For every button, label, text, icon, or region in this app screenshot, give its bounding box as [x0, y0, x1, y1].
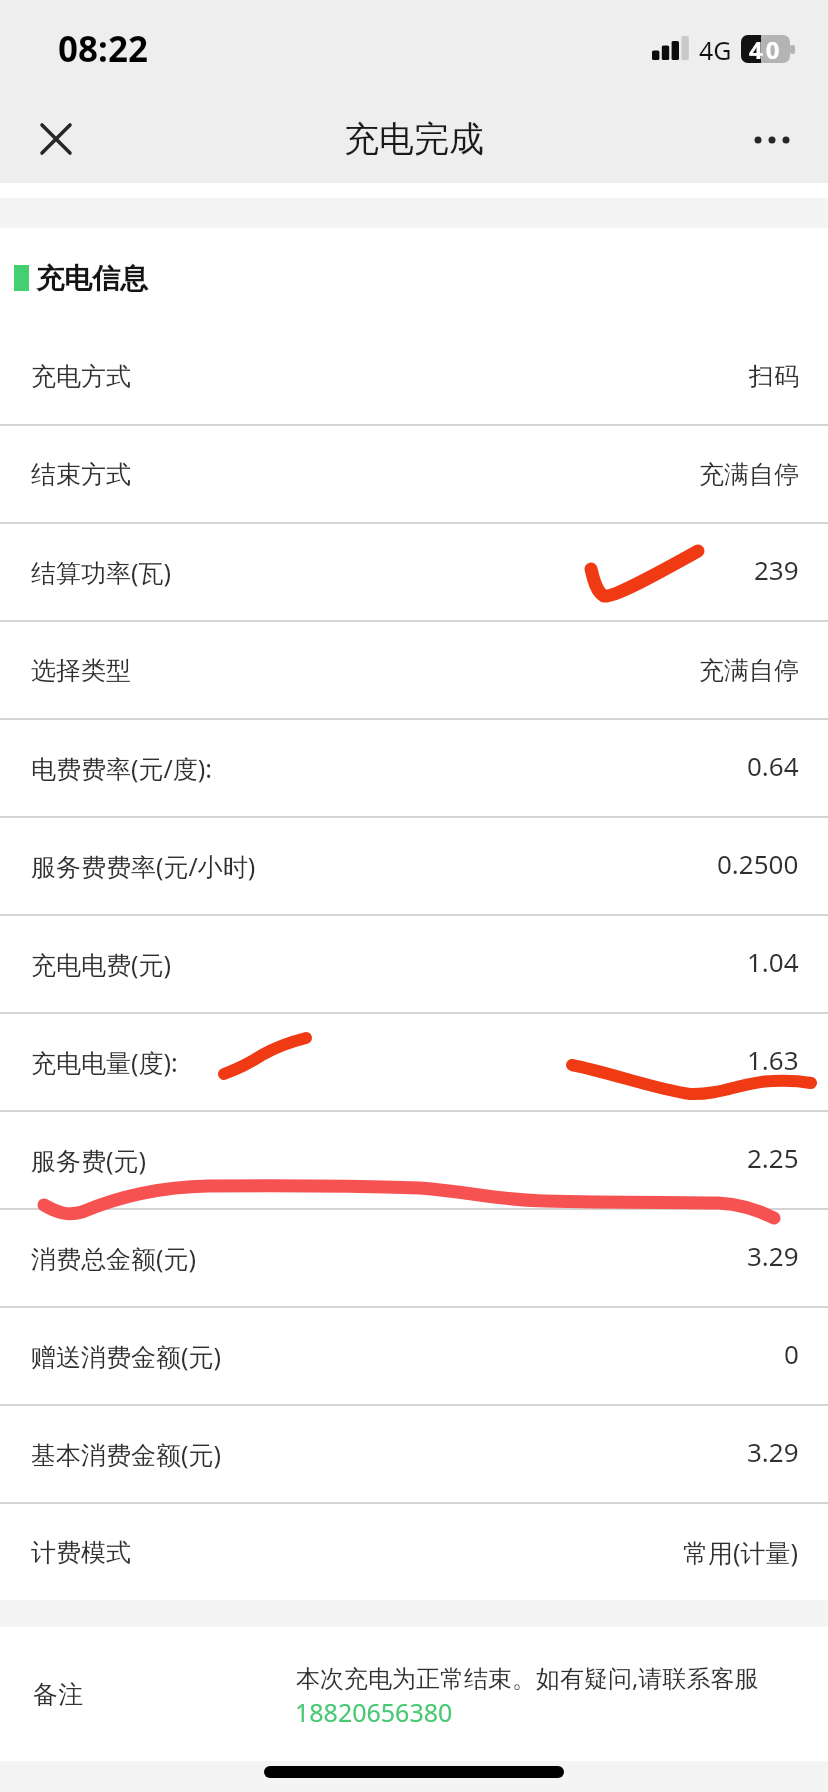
staticText: 充电电量(度):: [31, 1045, 178, 1079]
staticText: 1.04: [747, 944, 799, 979]
button[interactable]: 结算功率(瓦): [0, 522, 828, 620]
button[interactable]: 计费模式: [0, 1502, 828, 1600]
staticText: 基本消费金额(元): [31, 1437, 222, 1471]
staticText: 消费总金额(元): [31, 1241, 197, 1275]
staticText: 239: [754, 552, 799, 587]
button[interactable]: 充电电费(元): [0, 914, 828, 1012]
button[interactable]: 消费总金额(元): [0, 1208, 828, 1306]
button[interactable]: Close: [0, 92, 112, 183]
button[interactable]: 服务费(元): [0, 1110, 828, 1208]
button[interactable]: More options: [716, 92, 828, 183]
button[interactable]: 服务费费率(元/小时): [0, 816, 828, 914]
staticText: 充电电费(元): [31, 947, 172, 981]
button[interactable]: 结束方式: [0, 424, 828, 522]
staticText: 0.64: [747, 748, 799, 783]
button[interactable]: 基本消费金额(元): [0, 1404, 828, 1502]
staticText: 3.29: [747, 1238, 799, 1273]
staticText: 3.29: [747, 1434, 799, 1469]
staticText: 备注: [33, 1679, 83, 1710]
staticText: 电费费率(元/度):: [31, 751, 213, 785]
staticText: 充满自停: [699, 655, 799, 686]
button[interactable]: 选择类型: [0, 620, 828, 718]
button[interactable]: 充电方式: [0, 326, 828, 424]
staticText: 服务费(元): [31, 1143, 147, 1177]
staticText: 1.63: [747, 1042, 799, 1077]
button[interactable]: 充电电量(度):: [0, 1012, 828, 1110]
staticText: 选择类型: [31, 655, 131, 686]
staticText: 结算功率(瓦): [31, 555, 172, 589]
staticText: 2.25: [747, 1140, 799, 1175]
staticText: 08:22: [58, 25, 148, 73]
staticText: 充电方式: [31, 361, 131, 392]
staticText: 赠送消费金额(元): [31, 1339, 222, 1373]
staticText: 服务费费率(元/小时): [31, 849, 256, 883]
staticText: 扫码: [749, 361, 799, 392]
staticText: 充电完成: [344, 117, 484, 161]
staticText: 充满自停: [699, 459, 799, 490]
button[interactable]: 电费费率(元/度):: [0, 718, 828, 816]
staticText: 结束方式: [31, 459, 131, 490]
staticText: 40: [749, 35, 783, 61]
staticText: 18820656380: [295, 1695, 453, 1729]
staticText: 计费模式: [31, 1537, 131, 1568]
staticText: 4G: [699, 33, 732, 67]
button[interactable]: 赠送消费金额(元): [0, 1306, 828, 1404]
button[interactable]: 备注: [0, 1627, 828, 1761]
staticText: 充电信息: [36, 261, 148, 296]
staticText: 0: [784, 1336, 799, 1371]
staticText: 常用(计量): [683, 1535, 799, 1569]
staticText: 本次充电为正常结束。如有疑问,请联系客服: [296, 1661, 759, 1694]
staticText: 0.2500: [717, 846, 799, 881]
